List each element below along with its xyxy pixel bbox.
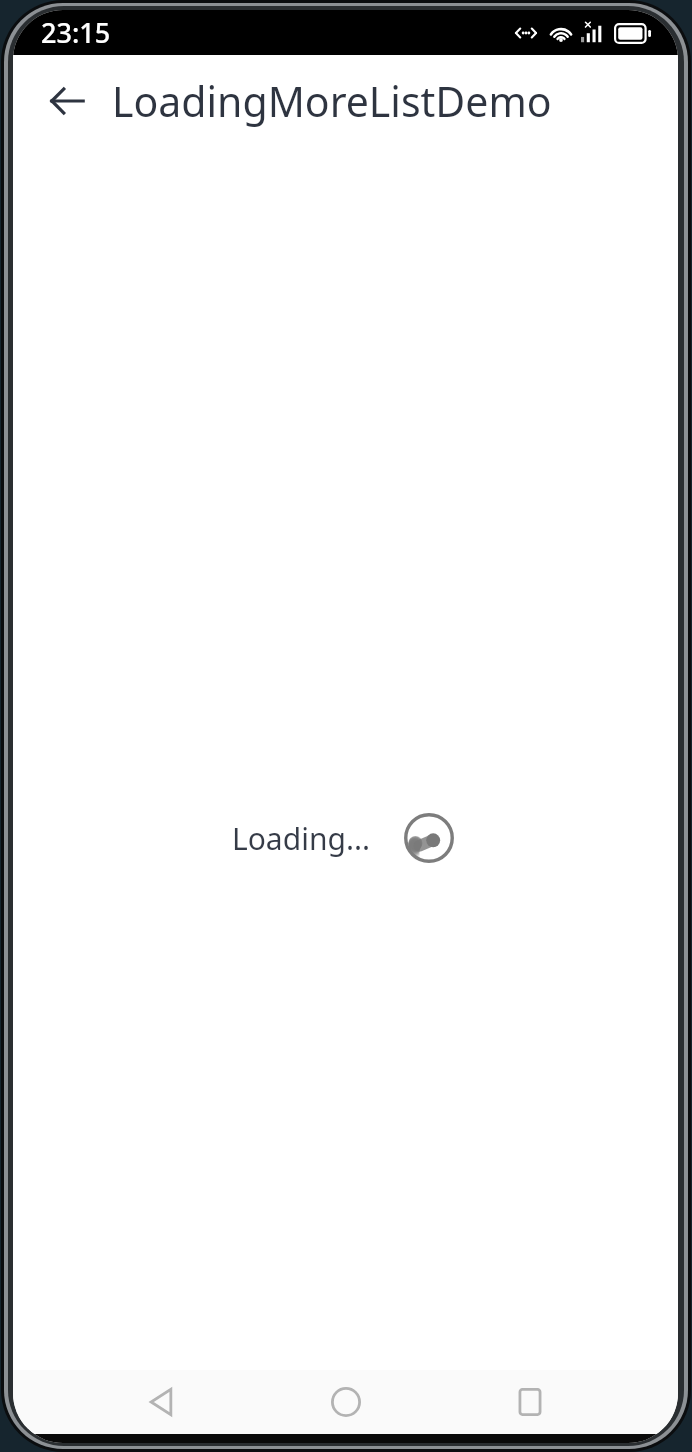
staticText: LoadingMoreListDemo (112, 73, 552, 129)
staticText: Loading... (232, 818, 370, 859)
button[interactable]: Back (126, 1372, 198, 1432)
button[interactable]: Home (310, 1372, 382, 1432)
button[interactable]: Back (39, 73, 95, 129)
button[interactable]: Loading... (232, 807, 460, 869)
staticText: 23:15 (41, 14, 111, 51)
button[interactable]: Recent apps (494, 1372, 566, 1432)
